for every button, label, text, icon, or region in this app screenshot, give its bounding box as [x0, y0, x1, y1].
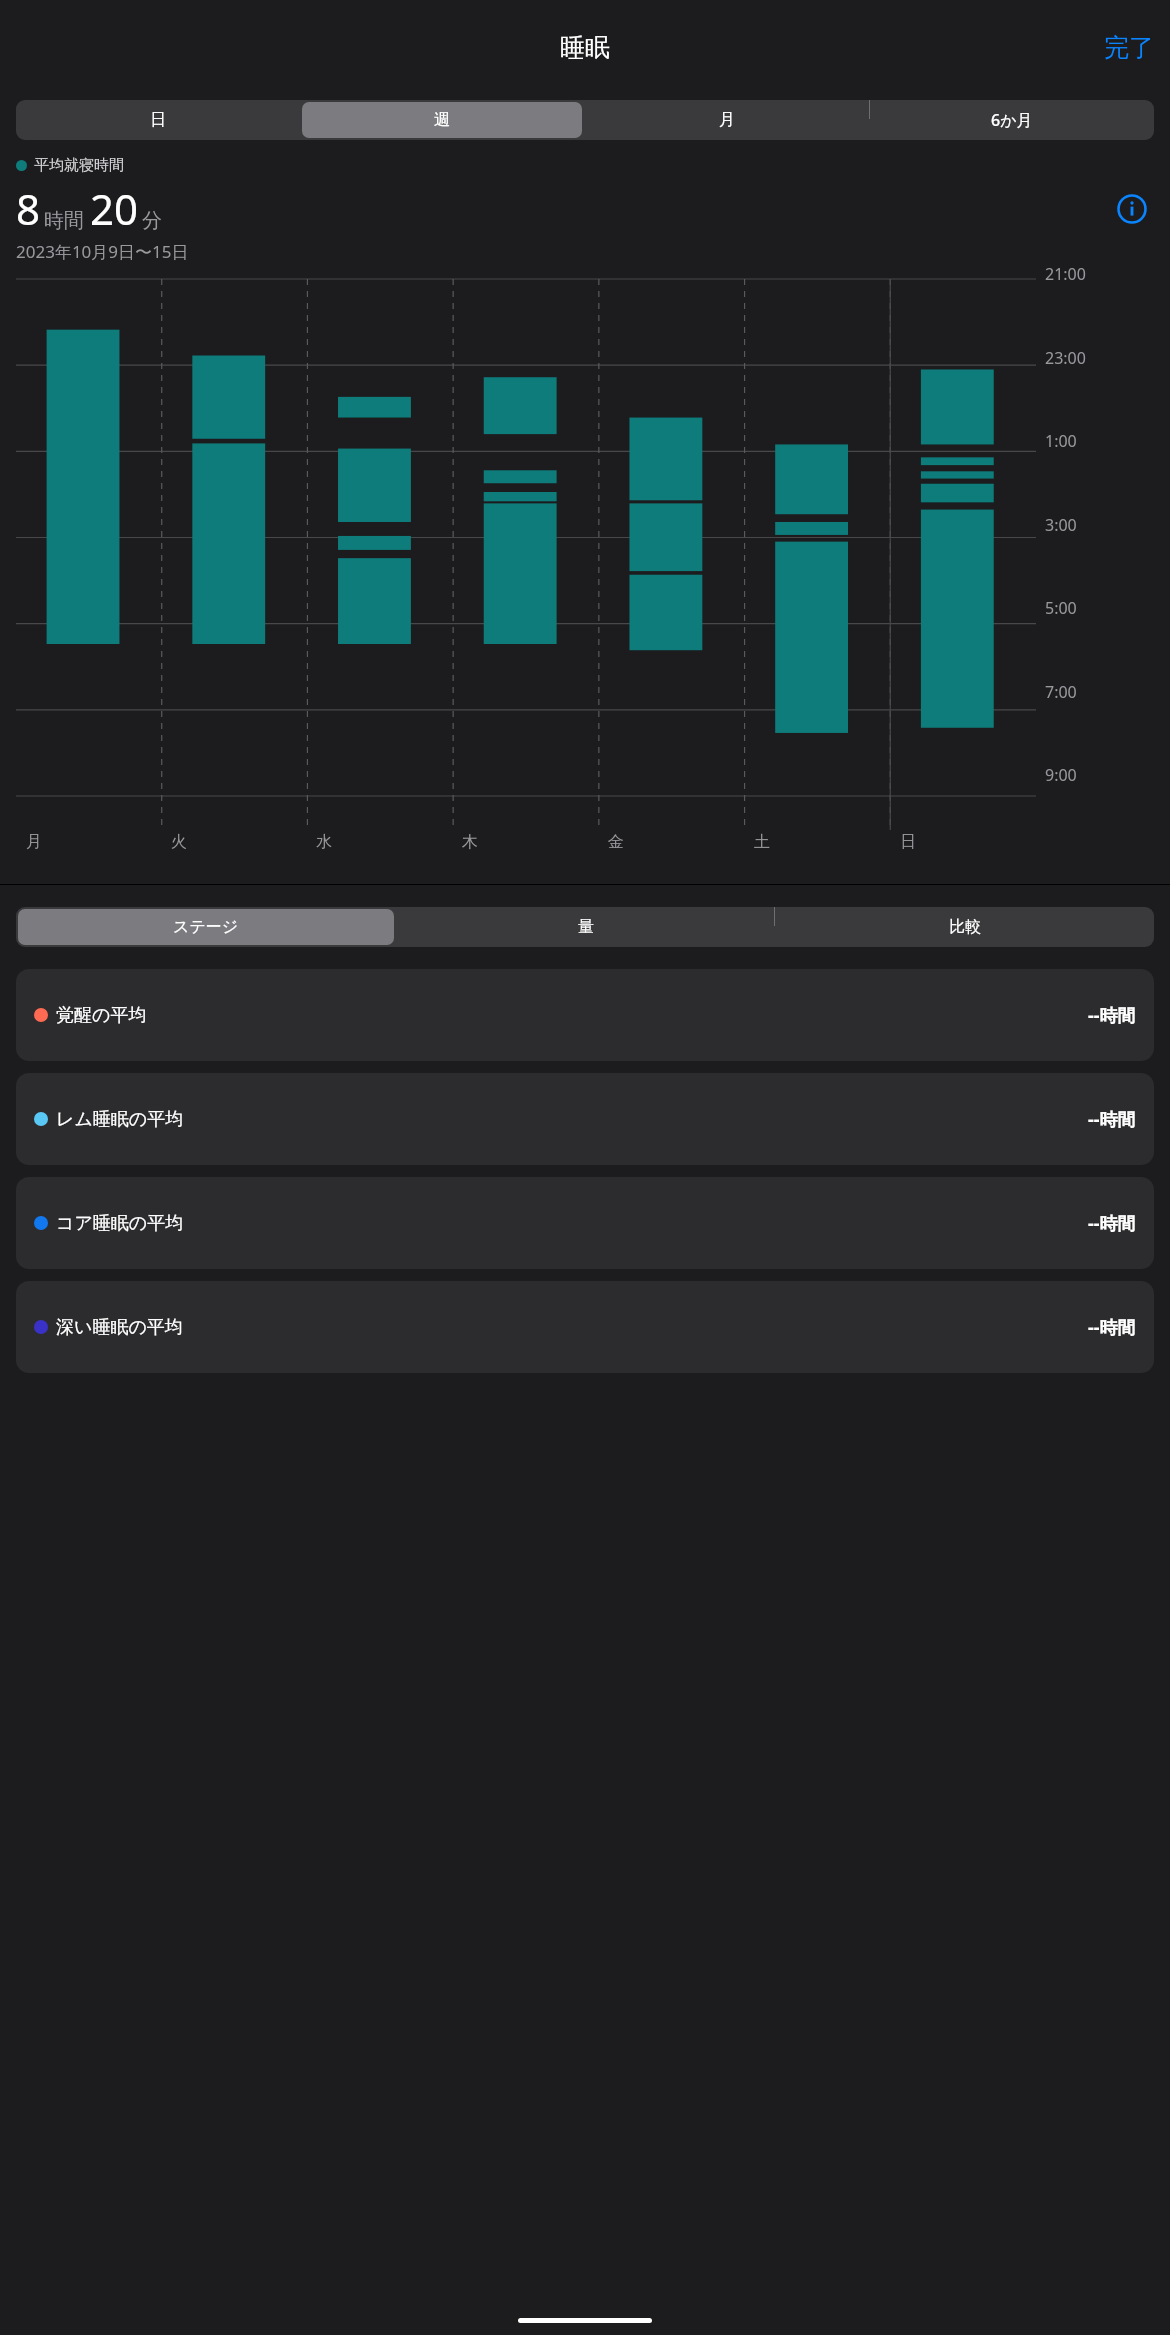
button[interactable]: 覚醒の平均	[16, 969, 1154, 1061]
staticText: 深い睡眠の平均	[56, 1316, 183, 1339]
staticText: 週	[434, 110, 450, 130]
staticText: 量	[578, 917, 594, 937]
button[interactable]: 深い睡眠の平均	[16, 1281, 1154, 1373]
staticText: 比較	[949, 917, 981, 937]
staticText: 3:00	[1045, 514, 1077, 536]
button[interactable]: 週	[302, 102, 582, 138]
staticText: --時間	[1088, 1211, 1136, 1236]
staticText: 日	[900, 832, 916, 852]
staticText: レム睡眠の平均	[56, 1108, 184, 1131]
staticText: 土	[754, 832, 770, 852]
staticText: 5:00	[1045, 597, 1077, 619]
button[interactable]: ステージ	[18, 909, 394, 945]
staticText: 金	[608, 832, 624, 852]
staticText: 時間	[44, 208, 84, 233]
staticText: 7:00	[1045, 681, 1077, 703]
staticText: 覚醒の平均	[56, 1004, 147, 1027]
staticText: --時間	[1088, 1315, 1136, 1340]
button[interactable]: 日	[18, 102, 298, 138]
staticText: 水	[316, 832, 332, 852]
staticText: 21:00	[1045, 263, 1086, 285]
staticText: 分	[142, 208, 162, 233]
staticText: 6か月	[991, 109, 1033, 131]
button[interactable]: 量	[398, 909, 773, 945]
staticText: --時間	[1088, 1003, 1136, 1028]
button[interactable]: 完了	[1088, 26, 1170, 69]
staticText: --時間	[1088, 1107, 1136, 1132]
staticText: 火	[171, 832, 187, 852]
staticText: 8	[16, 180, 41, 237]
staticText: コア睡眠の平均	[56, 1212, 184, 1235]
staticText: 平均就寝時間	[34, 156, 124, 175]
button[interactable]: 比較	[777, 909, 1152, 945]
button[interactable]: コア睡眠の平均	[16, 1177, 1154, 1269]
staticText: 2023年10月9日〜15日	[16, 240, 189, 263]
button[interactable]: 6か月	[871, 102, 1152, 138]
staticText: ステージ	[173, 917, 239, 937]
staticText: 9:00	[1045, 764, 1077, 786]
button[interactable]: レム睡眠の平均	[16, 1073, 1154, 1165]
staticText: 20	[90, 180, 139, 237]
staticText: 1:00	[1045, 430, 1077, 452]
staticText: 睡眠	[560, 32, 610, 63]
staticText: 完了	[1104, 32, 1154, 63]
button[interactable]: 情報	[1110, 187, 1154, 231]
staticText: 日	[150, 110, 166, 130]
staticText: 23:00	[1045, 347, 1086, 369]
staticText: 月	[719, 110, 735, 130]
button[interactable]: 月	[586, 102, 867, 138]
staticText: 月	[26, 832, 42, 852]
staticText: 木	[462, 832, 478, 852]
